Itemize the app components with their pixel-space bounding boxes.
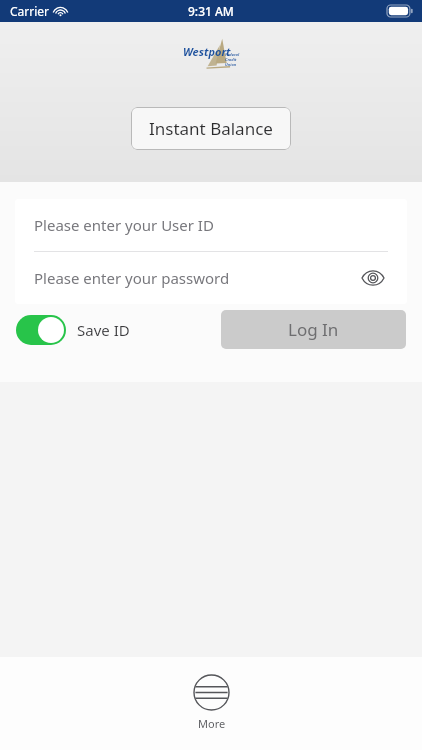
staticText: Union	[225, 62, 237, 67]
staticText: Carrier	[10, 3, 50, 19]
button[interactable]: Please enter your password	[15, 252, 407, 304]
button[interactable]: Log In	[221, 310, 406, 349]
staticText: Please enter your password	[34, 268, 230, 288]
staticText: Please enter your User ID	[34, 215, 214, 235]
staticText: More	[198, 716, 226, 731]
staticText: 9:31 AM	[188, 3, 234, 19]
staticText: Instant Balance	[149, 117, 273, 140]
staticText: Log In	[288, 318, 339, 341]
button[interactable]: Save ID	[16, 315, 130, 345]
button[interactable]: Instant Balance	[131, 107, 291, 150]
button[interactable]: More	[193, 674, 230, 731]
staticText: Save ID	[77, 320, 130, 340]
button[interactable]: Show password	[358, 263, 388, 293]
button[interactable]: Please enter your User ID	[15, 199, 407, 251]
staticText: Credit	[225, 57, 237, 62]
staticText: Westport	[183, 44, 231, 59]
staticText: Federal	[225, 52, 240, 57]
